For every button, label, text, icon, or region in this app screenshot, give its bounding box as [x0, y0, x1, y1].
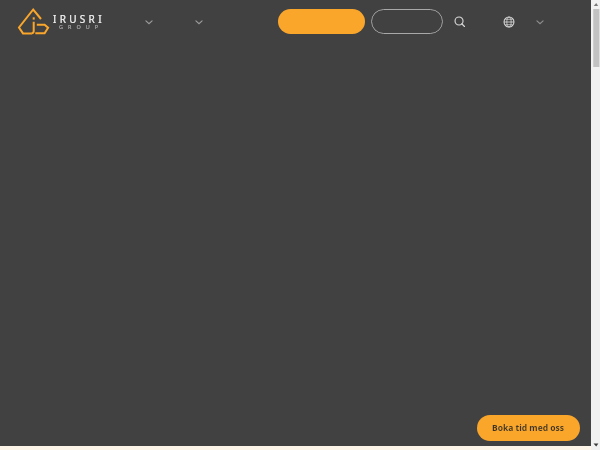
- button[interactable]: Search: [450, 12, 470, 32]
- button[interactable]: About menu: [164, 10, 206, 34]
- button[interactable]: Language menu: [531, 13, 549, 31]
- button[interactable]: Scroll down: [591, 441, 600, 450]
- button[interactable]: Language: [499, 12, 519, 32]
- button[interactable]: Services menu: [114, 10, 156, 34]
- button[interactable]: Irusri Group home: [16, 5, 108, 39]
- staticText: Boka tid med oss: [492, 422, 565, 434]
- button[interactable]: Scroll up: [591, 0, 600, 9]
- button[interactable]: Boka tid med oss: [477, 415, 580, 441]
- staticText: GROUP: [59, 23, 104, 30]
- button[interactable]: Secondary action: [371, 9, 443, 34]
- staticText: IRUSRI: [53, 12, 105, 26]
- button[interactable]: Primary action: [278, 9, 365, 34]
